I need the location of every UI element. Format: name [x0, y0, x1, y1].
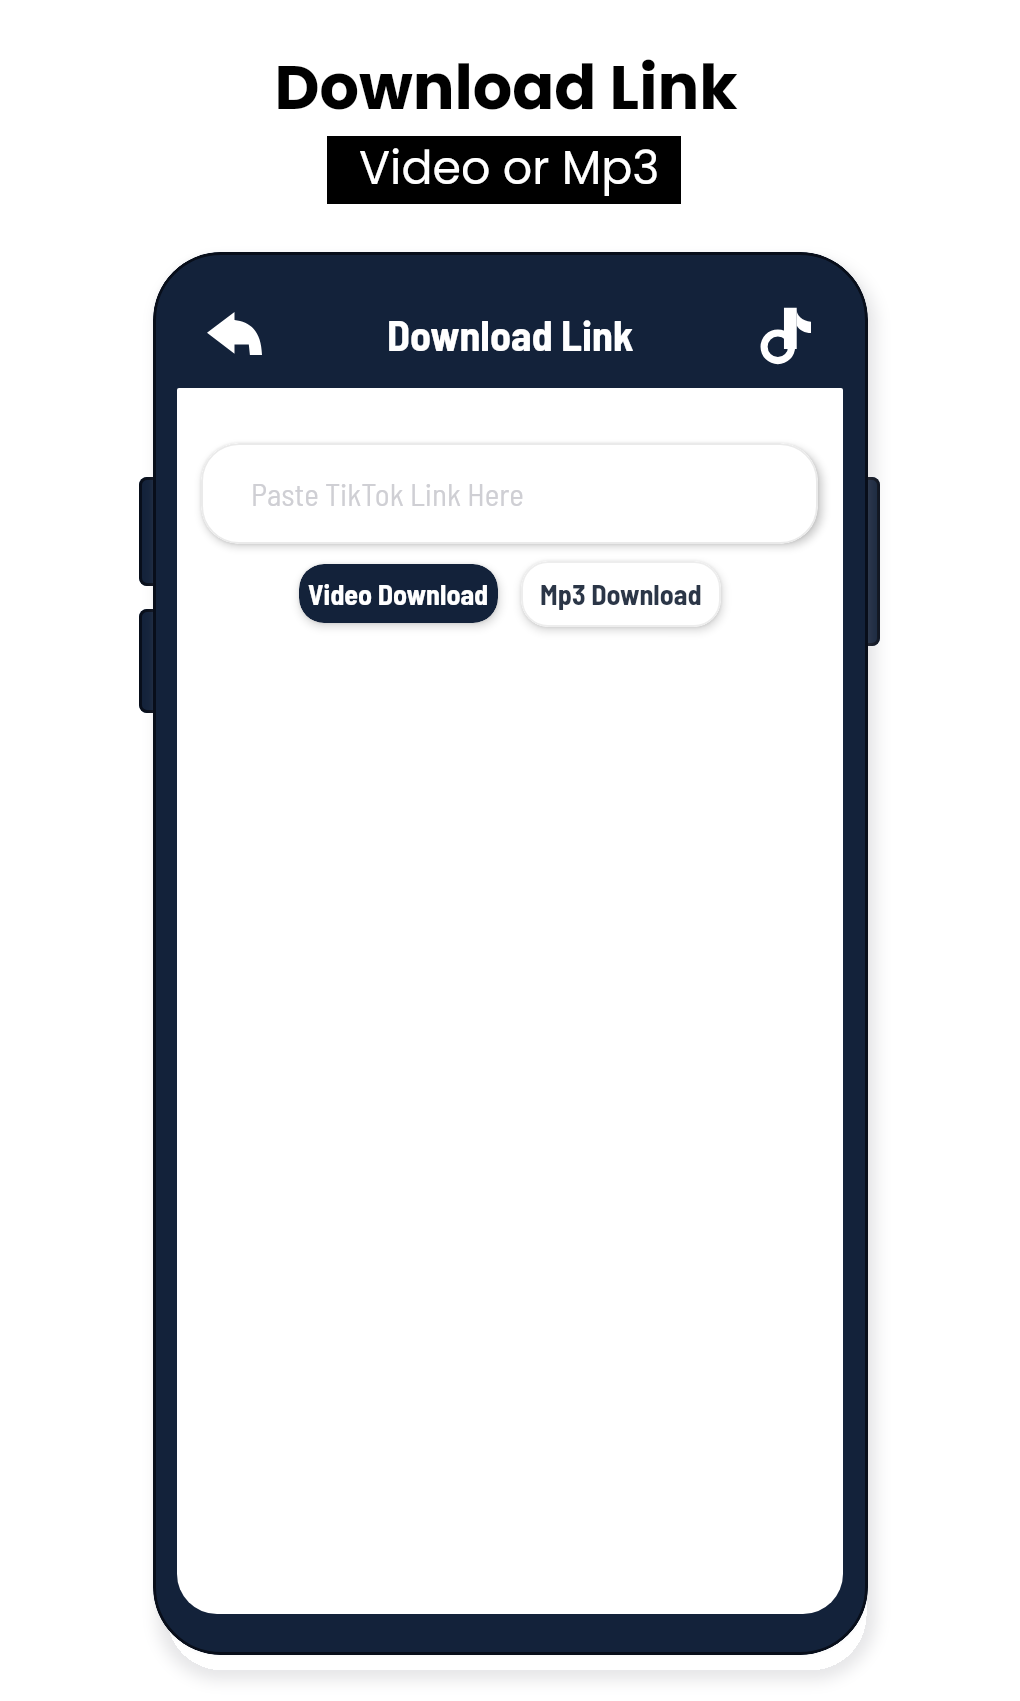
button[interactable]: Video Download — [299, 564, 498, 623]
staticText: Download Link — [274, 44, 738, 131]
button[interactable]: Back — [193, 299, 275, 369]
staticText: Download Link — [387, 309, 634, 359]
staticText: Video or Mp3 — [359, 136, 660, 200]
staticText: Paste TikTok Link Here — [251, 475, 524, 512]
button[interactable]: TikTok — [743, 294, 827, 378]
staticText: Video Download — [308, 577, 489, 611]
button[interactable]: Mp3 Download — [521, 561, 721, 627]
staticText: Mp3 Download — [540, 577, 702, 611]
button[interactable]: Paste TikTok Link Here — [201, 443, 818, 544]
